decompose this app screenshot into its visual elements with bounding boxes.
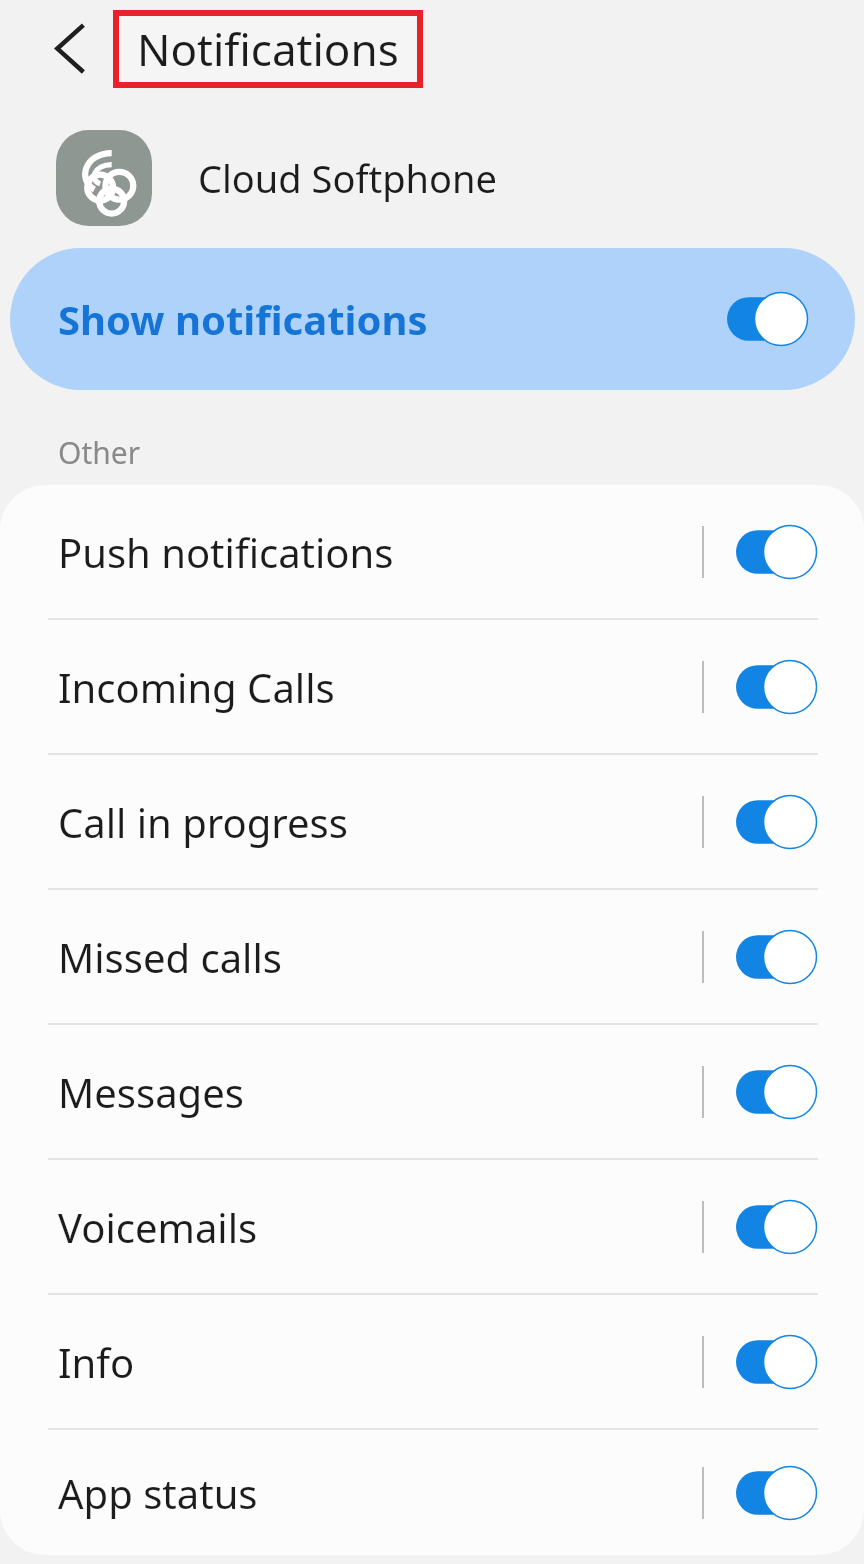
- button[interactable]: Call in progress: [0, 755, 864, 888]
- staticText: Missed calls: [58, 930, 702, 984]
- button[interactable]: Toggle on: [736, 794, 818, 850]
- button[interactable]: Back: [40, 8, 102, 86]
- button[interactable]: Toggle on: [727, 291, 809, 347]
- button[interactable]: Toggle on: [736, 659, 818, 715]
- staticText: Other: [58, 432, 141, 473]
- button[interactable]: Voicemails: [0, 1160, 864, 1293]
- button[interactable]: Messages: [0, 1025, 864, 1158]
- staticText: Cloud Softphone: [198, 152, 497, 204]
- button[interactable]: Toggle on: [736, 1334, 818, 1390]
- staticText: Messages: [58, 1065, 702, 1119]
- button[interactable]: Toggle on: [736, 929, 818, 985]
- staticText: Push notifications: [58, 525, 702, 579]
- button[interactable]: Toggle on: [736, 524, 818, 580]
- staticText: Voicemails: [58, 1200, 702, 1254]
- button[interactable]: Incoming Calls: [0, 620, 864, 753]
- button[interactable]: Show notifications: [10, 248, 855, 390]
- staticText: App status: [58, 1466, 702, 1520]
- button[interactable]: Info: [0, 1295, 864, 1428]
- staticText: Info: [58, 1335, 702, 1389]
- button[interactable]: App status: [0, 1430, 864, 1555]
- staticText: Notifications: [137, 19, 399, 79]
- staticText: Incoming Calls: [58, 660, 702, 714]
- button[interactable]: Push notifications: [0, 485, 864, 618]
- button[interactable]: Toggle on: [736, 1199, 818, 1255]
- button[interactable]: Toggle on: [736, 1064, 818, 1120]
- button[interactable]: Toggle on: [736, 1465, 818, 1521]
- staticText: Show notifications: [58, 292, 727, 346]
- staticText: Call in progress: [58, 795, 702, 849]
- button[interactable]: Missed calls: [0, 890, 864, 1023]
